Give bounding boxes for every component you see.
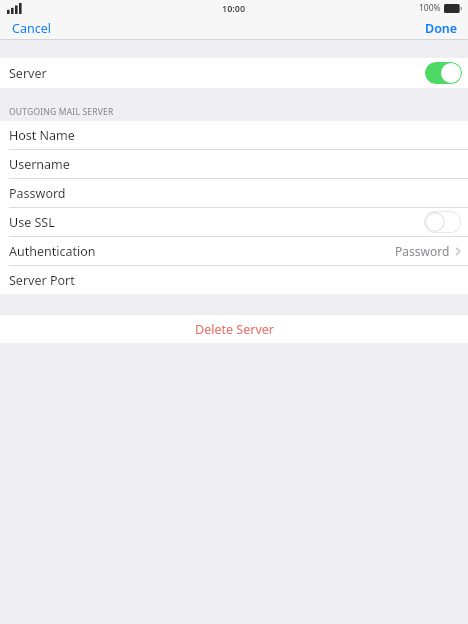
button[interactable]: Toggle off <box>424 211 461 233</box>
button[interactable]: Delete Server <box>0 315 468 343</box>
staticText: 10:00 <box>222 2 246 14</box>
button[interactable]: Server Port <box>0 266 468 294</box>
staticText: Delete Server <box>195 321 274 338</box>
button[interactable]: Done <box>415 16 468 40</box>
staticText: Authentication <box>9 243 96 260</box>
staticText: Password <box>9 185 66 202</box>
staticText: Username <box>9 156 70 173</box>
button[interactable]: Cancel <box>0 16 63 40</box>
staticText: Use SSL <box>9 214 55 231</box>
button[interactable]: Authentication <box>0 237 468 265</box>
button[interactable]: Host Name <box>0 121 468 149</box>
staticText: Done <box>425 20 458 37</box>
button[interactable]: Toggle on <box>425 62 462 84</box>
staticText: OUTGOING MAIL SERVER <box>9 106 114 118</box>
button[interactable]: Username <box>0 150 468 178</box>
staticText: Cancel <box>12 20 51 37</box>
staticText: 100% <box>419 2 441 14</box>
staticText: Host Name <box>9 127 75 144</box>
staticText: Password <box>395 243 450 259</box>
staticText: Server Port <box>9 272 75 289</box>
staticText: Server <box>9 65 47 82</box>
button[interactable]: Server <box>0 58 468 88</box>
button[interactable]: Password <box>0 179 468 207</box>
button[interactable]: Use SSL <box>0 208 468 236</box>
